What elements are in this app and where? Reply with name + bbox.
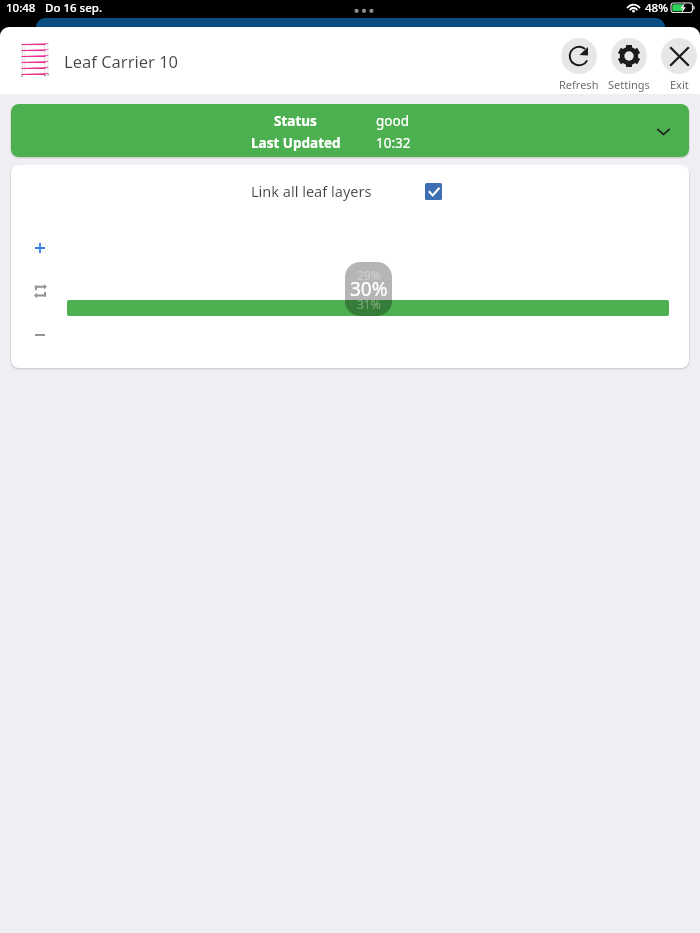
button[interactable]: Status xyxy=(11,104,689,157)
staticText: Refresh xyxy=(559,77,599,92)
button[interactable]: Exit xyxy=(654,29,700,92)
staticText: 10:32 xyxy=(376,134,411,152)
staticText: 10:48 xyxy=(6,0,36,15)
staticText: 48% xyxy=(645,0,668,15)
button[interactable]: Settings xyxy=(604,29,654,92)
staticText: 31% xyxy=(357,296,381,312)
button[interactable]: Refresh xyxy=(554,29,604,92)
staticText: good xyxy=(376,112,409,130)
button[interactable]: Swap direction xyxy=(27,278,53,304)
button[interactable]: Expand status xyxy=(650,118,676,144)
staticText: Leaf Carrier 10 xyxy=(64,50,179,72)
button[interactable]: Increase xyxy=(27,235,53,261)
staticText: 29% xyxy=(357,267,381,283)
staticText: Do 16 sep. xyxy=(45,0,103,15)
staticText: Exit xyxy=(670,77,689,92)
button[interactable]: Decrease xyxy=(27,322,53,348)
staticText: 30% xyxy=(350,276,388,302)
staticText: Status xyxy=(274,112,317,130)
staticText: Link all leaf layers xyxy=(251,181,372,201)
staticText: Settings xyxy=(608,77,650,92)
staticText: Last Updated xyxy=(251,134,341,152)
button[interactable]: Link all leaf layers xyxy=(251,181,442,201)
